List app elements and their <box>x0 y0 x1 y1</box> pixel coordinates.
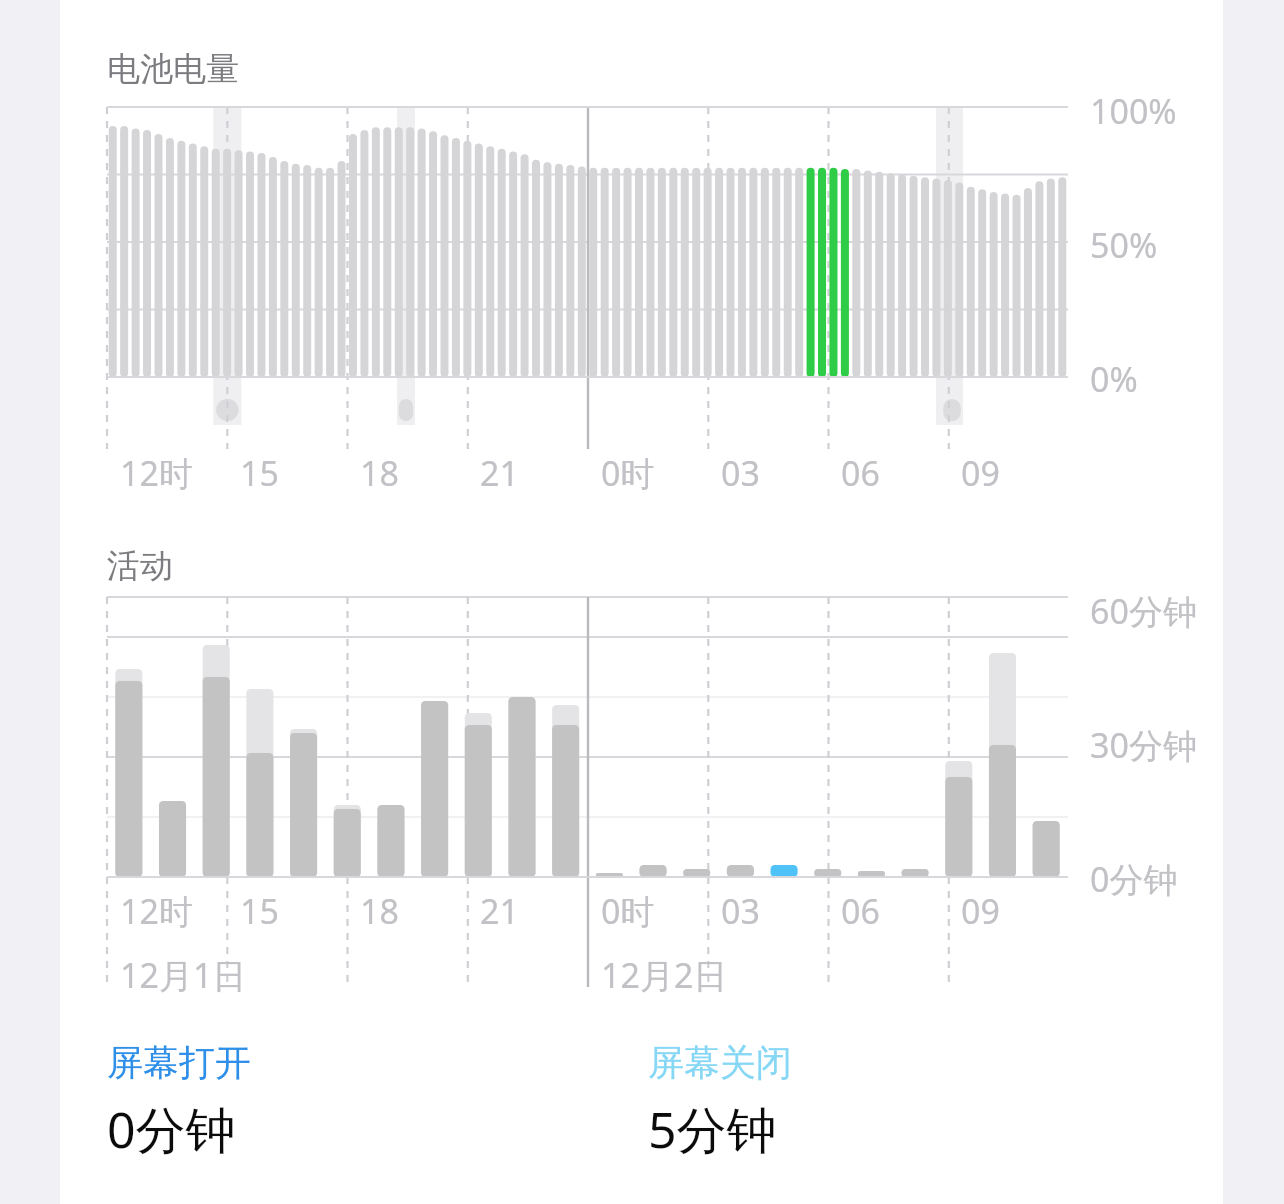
staticText: 18 <box>360 888 399 934</box>
staticText: 0分钟 <box>107 1095 236 1163</box>
staticText: 电池电量 <box>107 48 239 90</box>
staticText: 12时 <box>120 888 193 934</box>
staticText: 06 <box>841 888 880 934</box>
staticText: 03 <box>721 888 760 934</box>
staticText: 50% <box>1090 222 1158 268</box>
staticText: 15 <box>240 450 279 496</box>
staticText: 0时 <box>601 450 655 496</box>
staticText: 12时 <box>120 450 193 496</box>
staticText: 屏幕打开 <box>107 1040 251 1085</box>
staticText: 60分钟 <box>1090 588 1197 634</box>
staticText: 15 <box>240 888 279 934</box>
button[interactable]: 屏幕关闭 <box>648 1040 1028 1180</box>
staticText: 屏幕关闭 <box>648 1040 792 1085</box>
staticText: 0分钟 <box>1090 856 1178 902</box>
staticText: 5分钟 <box>648 1095 777 1163</box>
button[interactable]: 电池电量图表 <box>60 90 1223 510</box>
staticText: 21 <box>480 450 519 496</box>
staticText: 03 <box>721 450 760 496</box>
staticText: 06 <box>841 450 880 496</box>
staticText: 18 <box>360 450 399 496</box>
staticText: 12月2日 <box>601 952 728 998</box>
staticText: 21 <box>480 888 519 934</box>
staticText: 0% <box>1090 356 1138 402</box>
staticText: 09 <box>961 888 1000 934</box>
staticText: 100% <box>1090 88 1177 134</box>
staticText: 12月1日 <box>120 952 247 998</box>
staticText: 09 <box>961 450 1000 496</box>
button[interactable]: 活动图表 <box>60 590 1223 890</box>
button[interactable]: 屏幕打开 <box>107 1040 487 1180</box>
staticText: 0时 <box>601 888 655 934</box>
staticText: 活动 <box>107 545 173 587</box>
staticText: 30分钟 <box>1090 722 1197 768</box>
